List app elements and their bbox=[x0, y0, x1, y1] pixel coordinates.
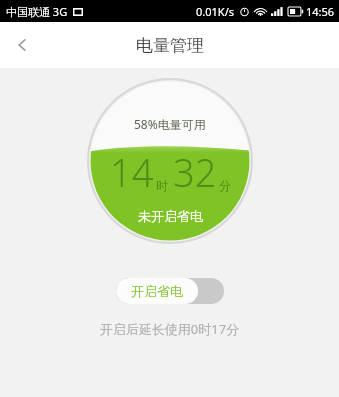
staticText: 未开启省电 bbox=[138, 208, 203, 224]
staticText: 中国联通 3G bbox=[6, 4, 68, 19]
button[interactable]: Back bbox=[0, 23, 44, 67]
staticText: 14:56 bbox=[306, 4, 335, 19]
staticText: 开启省电 bbox=[131, 283, 183, 299]
staticText: 0.01K/s bbox=[196, 4, 234, 19]
staticText: 32 bbox=[173, 146, 217, 198]
staticText: 58%电量可用 bbox=[134, 116, 206, 132]
staticText: 分 bbox=[219, 178, 231, 193]
staticText: 时 bbox=[156, 178, 168, 193]
staticText: 电量管理 bbox=[136, 35, 204, 56]
staticText: 14 bbox=[110, 146, 154, 198]
staticText: 开启后延长使用0时17分 bbox=[0, 320, 339, 338]
button[interactable]: 开启省电 bbox=[116, 278, 224, 304]
